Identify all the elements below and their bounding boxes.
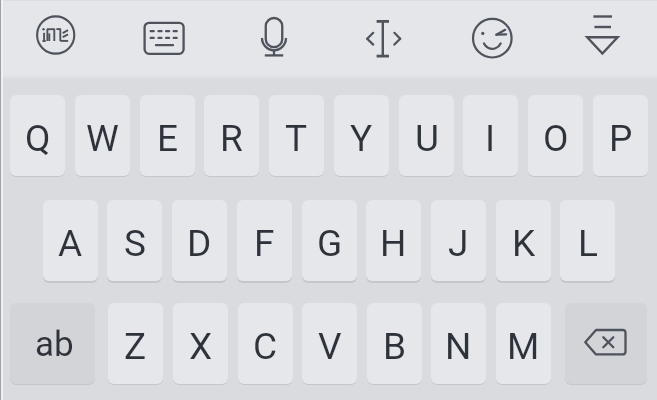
staticText: D xyxy=(187,222,212,265)
staticText: T xyxy=(285,117,308,160)
staticText: R xyxy=(220,117,243,160)
button[interactable]: M xyxy=(496,303,551,384)
staticText: P xyxy=(609,117,633,160)
staticText: Y xyxy=(350,117,373,160)
staticText: Q xyxy=(25,117,51,160)
staticText: Z xyxy=(124,325,147,368)
staticText: G xyxy=(317,222,343,265)
button[interactable]: H xyxy=(366,200,421,281)
staticText: K xyxy=(512,222,536,265)
button[interactable]: G xyxy=(302,200,357,281)
staticText: O xyxy=(543,117,569,160)
button[interactable]: L xyxy=(560,200,615,281)
staticText: L xyxy=(578,222,598,265)
button[interactable]: B xyxy=(367,303,422,384)
button[interactable]: U xyxy=(399,95,454,176)
button[interactable]: V xyxy=(302,303,357,384)
button[interactable]: Hide keyboard xyxy=(572,4,632,72)
button[interactable]: Emoji xyxy=(462,4,522,72)
staticText: W xyxy=(86,117,119,160)
staticText: S xyxy=(124,222,146,265)
button[interactable]: I xyxy=(463,95,518,176)
button[interactable]: D xyxy=(172,200,227,281)
button[interactable]: Input method switcher xyxy=(25,4,87,72)
staticText: U xyxy=(415,117,439,160)
staticText: A xyxy=(58,222,83,265)
staticText: B xyxy=(383,325,407,368)
staticText: M xyxy=(507,325,540,368)
button[interactable]: Keyboard layout xyxy=(134,4,194,72)
button[interactable]: W xyxy=(75,95,130,176)
staticText: F xyxy=(254,222,275,265)
staticText: ab xyxy=(35,324,74,365)
button[interactable]: Q xyxy=(10,95,65,176)
staticText: V xyxy=(318,325,342,368)
staticText: X xyxy=(189,325,213,368)
staticText: C xyxy=(253,325,278,368)
button[interactable]: A xyxy=(43,200,98,281)
button[interactable]: P xyxy=(593,95,648,176)
button[interactable]: F xyxy=(237,200,292,281)
button[interactable]: O xyxy=(528,95,583,176)
button[interactable]: E xyxy=(140,95,195,176)
staticText: E xyxy=(157,117,179,160)
staticText: H xyxy=(380,222,407,265)
staticText: I xyxy=(485,117,496,160)
button[interactable]: Backspace xyxy=(565,303,647,384)
button[interactable]: J xyxy=(431,200,486,281)
button[interactable]: K xyxy=(496,200,551,281)
button[interactable]: T xyxy=(269,95,324,176)
staticText: J xyxy=(448,222,469,265)
staticText: N xyxy=(445,325,472,368)
button[interactable]: Move cursor xyxy=(353,4,413,72)
button[interactable]: C xyxy=(238,303,293,384)
button[interactable]: Y xyxy=(334,95,389,176)
button[interactable]: Switch to letters xyxy=(10,303,95,384)
button[interactable]: Z xyxy=(108,303,163,384)
button[interactable]: Voice input xyxy=(244,4,304,72)
button[interactable]: S xyxy=(107,200,162,281)
button[interactable]: X xyxy=(173,303,228,384)
button[interactable]: N xyxy=(431,303,486,384)
button[interactable]: R xyxy=(204,95,259,176)
